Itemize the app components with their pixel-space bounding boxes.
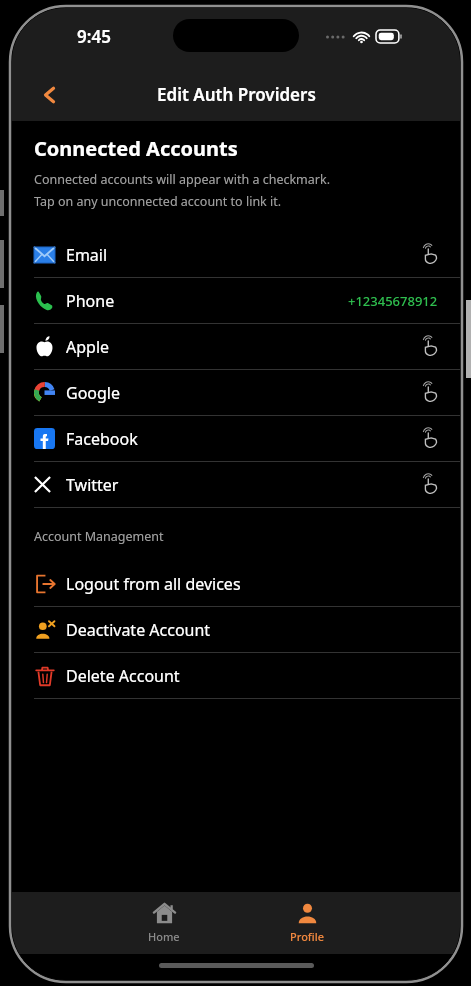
- staticText: Account Management: [34, 528, 164, 545]
- staticText: Tap on any unconnected account to link i…: [34, 193, 282, 210]
- staticText: Deactivate Account: [66, 619, 211, 641]
- button[interactable]: Facebook: [12, 416, 460, 461]
- staticText: Connected Accounts: [34, 135, 238, 162]
- button[interactable]: Twitter: [12, 462, 460, 507]
- button[interactable]: Logout from all devices: [12, 561, 460, 606]
- staticText: 9:45: [77, 25, 111, 48]
- staticText: +12345678912: [348, 292, 438, 310]
- button[interactable]: Deactivate Account: [12, 607, 460, 652]
- button[interactable]: Profile: [256, 892, 358, 954]
- button[interactable]: Back: [32, 77, 68, 113]
- staticText: Logout from all devices: [66, 573, 241, 595]
- staticText: Home: [148, 929, 180, 944]
- staticText: Twitter: [66, 474, 119, 496]
- button[interactable]: Google: [12, 370, 460, 415]
- button[interactable]: Home: [113, 892, 215, 954]
- button[interactable]: Delete Account: [12, 653, 460, 698]
- button[interactable]: Phone: [12, 278, 460, 323]
- staticText: Phone: [66, 290, 115, 312]
- staticText: Apple: [66, 336, 110, 358]
- staticText: Email: [66, 244, 108, 266]
- staticText: Facebook: [66, 428, 138, 450]
- staticText: Google: [66, 382, 121, 404]
- staticText: Edit Auth Providers: [157, 83, 316, 106]
- staticText: Profile: [290, 929, 325, 944]
- button[interactable]: Apple: [12, 324, 460, 369]
- staticText: Connected accounts will appear with a ch…: [34, 171, 330, 188]
- button[interactable]: Email: [12, 232, 460, 277]
- staticText: Delete Account: [66, 665, 180, 687]
